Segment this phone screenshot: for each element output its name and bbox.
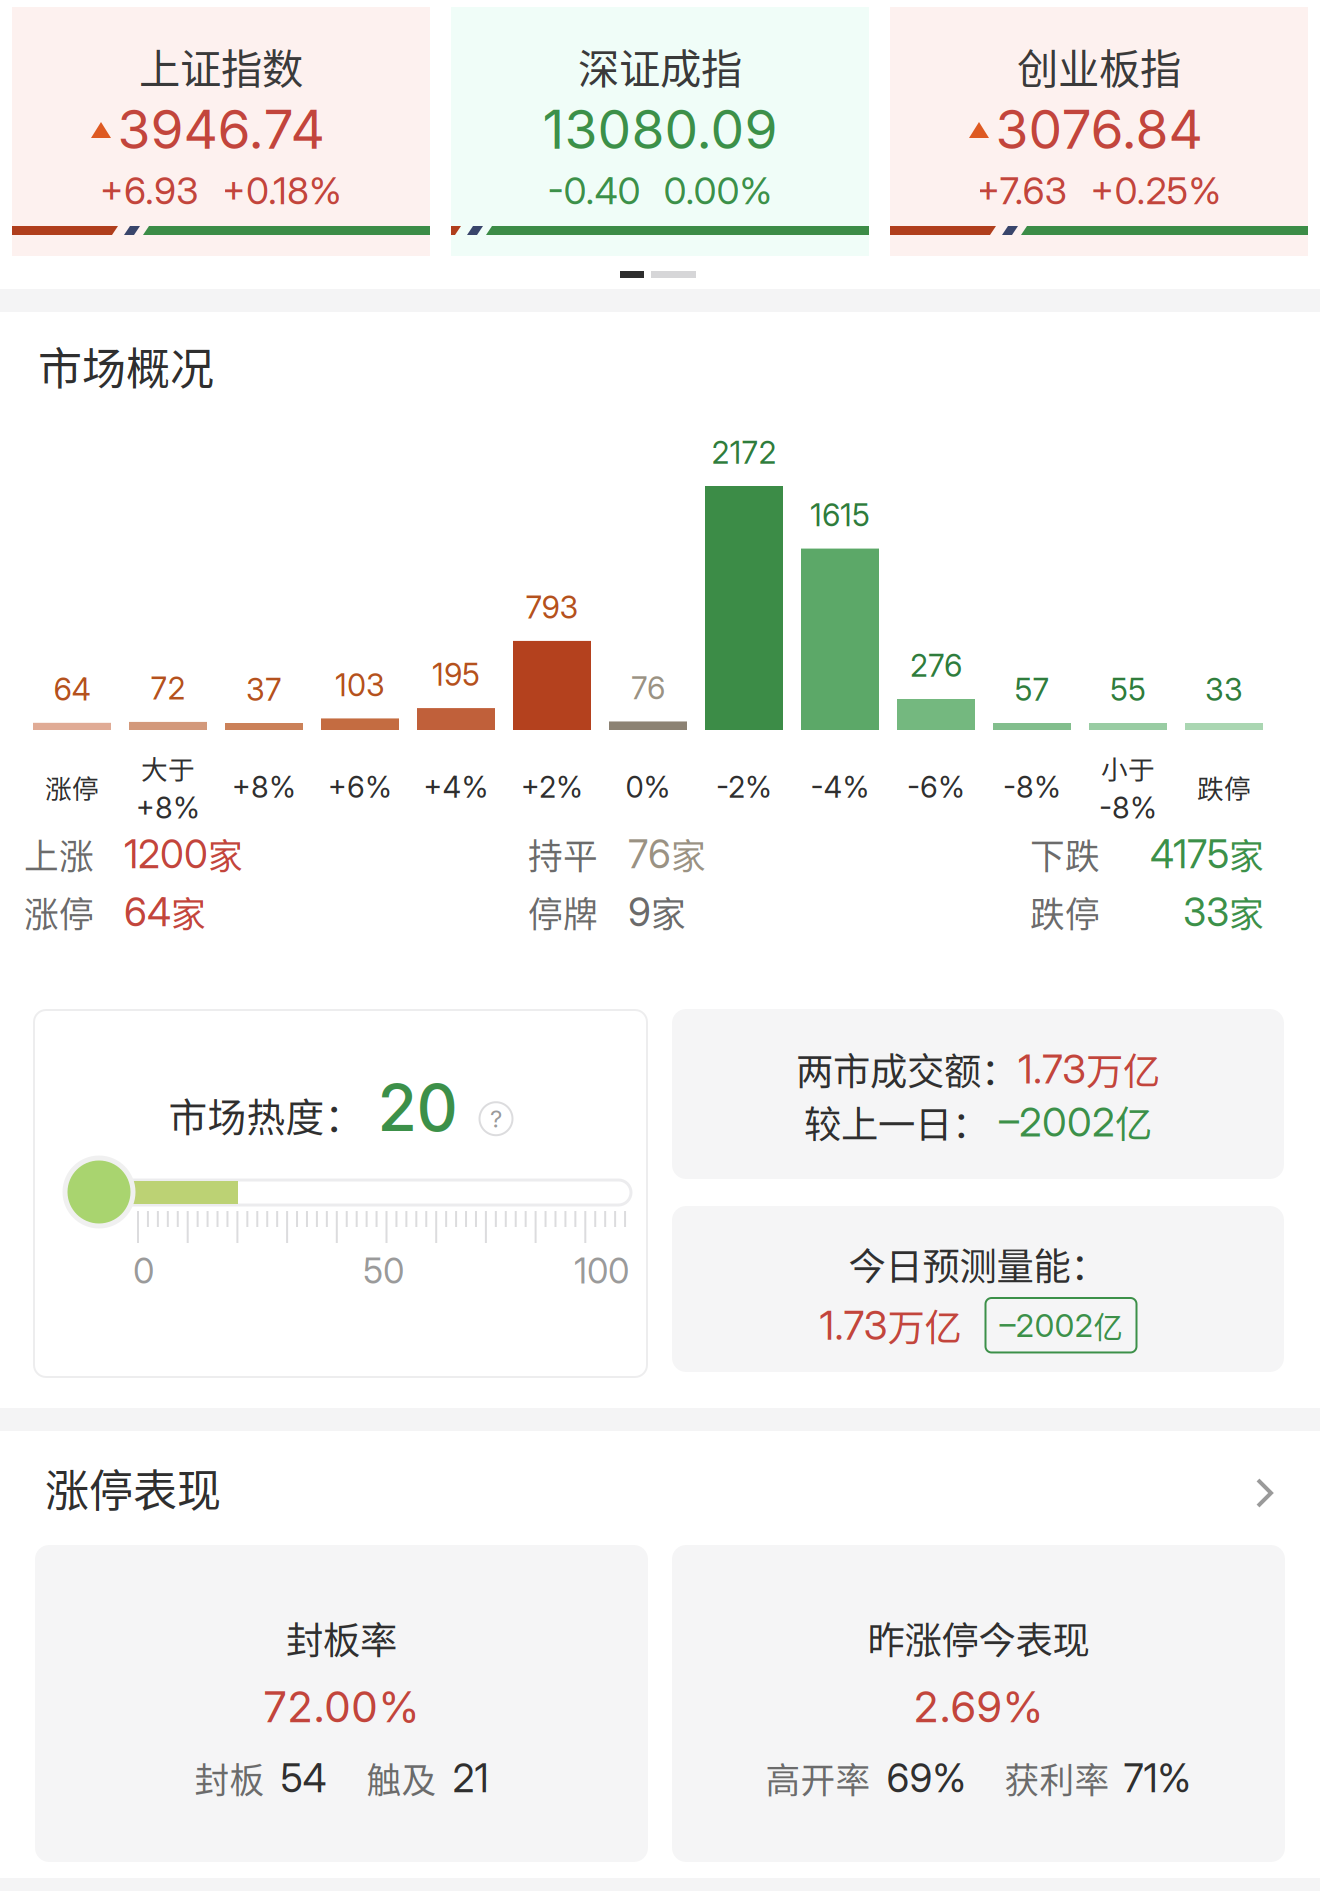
staticText: 276 xyxy=(910,647,962,684)
staticText: 停牌 xyxy=(528,887,598,937)
staticText: 亿 xyxy=(1093,1304,1122,1346)
staticText: -0.40 xyxy=(547,168,640,213)
staticText: 0% xyxy=(625,769,670,805)
staticText: -6% xyxy=(907,769,965,805)
staticText: +8% xyxy=(232,769,296,805)
staticText: 195 xyxy=(432,656,480,693)
staticText: 上证指数 xyxy=(139,36,303,96)
staticText: 1.73 xyxy=(1018,1045,1086,1093)
staticText: 持平 xyxy=(528,829,598,879)
staticText: 100 xyxy=(574,1250,629,1292)
staticText: 1200 xyxy=(124,831,208,877)
button[interactable]: 创业板指 xyxy=(890,7,1308,256)
staticText: 9 xyxy=(628,889,651,935)
staticText: 涨停表现 xyxy=(45,1456,221,1520)
staticText: 1.73 xyxy=(819,1301,887,1349)
staticText: 上涨 xyxy=(24,829,94,879)
staticText: 两市成交额： xyxy=(796,1042,1018,1096)
staticText: 下跌 xyxy=(1030,829,1100,879)
staticText: 创业板指 xyxy=(1017,36,1181,96)
staticText: 1615 xyxy=(810,497,870,534)
staticText: 57 xyxy=(1014,671,1049,708)
button[interactable]: 涨停表现 xyxy=(0,1431,1320,1548)
staticText: +6.93 xyxy=(100,168,199,213)
staticText: +7.63 xyxy=(976,168,1067,213)
staticText: 3076.84 xyxy=(995,97,1202,161)
staticText: +0.25% xyxy=(1090,168,1221,213)
staticText: 71% xyxy=(1123,1755,1191,1801)
staticText: 家 xyxy=(171,887,206,937)
staticText: ? xyxy=(490,1104,502,1133)
staticText: –2002 xyxy=(999,1098,1115,1146)
staticText: 家 xyxy=(671,829,706,879)
staticText: 封板率 xyxy=(286,1611,397,1665)
staticText: +6% xyxy=(328,769,392,805)
staticText: 37 xyxy=(246,671,282,708)
staticText: 小于 xyxy=(1101,748,1155,787)
staticText: -4% xyxy=(810,769,869,805)
staticText: 家 xyxy=(208,829,243,879)
staticText: 家 xyxy=(1229,887,1264,937)
staticText: 较上一日： xyxy=(804,1095,989,1149)
staticText: 跌停 xyxy=(1030,887,1100,937)
staticText: 54 xyxy=(280,1755,326,1801)
staticText: -2% xyxy=(716,769,772,805)
staticText: 封板 xyxy=(194,1753,264,1803)
staticText: +0.18% xyxy=(222,168,342,213)
staticText: 4175 xyxy=(1150,831,1229,877)
staticText: 昨涨停今表现 xyxy=(867,1611,1089,1665)
staticText: 72 xyxy=(150,670,185,707)
staticText: -8% xyxy=(1003,769,1061,805)
button[interactable]: 深证成指 xyxy=(451,7,869,256)
staticText: 3946.74 xyxy=(117,97,324,161)
staticText: 72.00% xyxy=(263,1681,420,1733)
staticText: 76 xyxy=(631,669,665,707)
staticText: 33 xyxy=(1205,671,1243,708)
staticText: 21 xyxy=(452,1755,488,1801)
staticText: 万亿 xyxy=(1086,1042,1160,1096)
staticText: 0 xyxy=(133,1250,154,1292)
staticText: 76 xyxy=(628,831,671,877)
staticText: 33 xyxy=(1183,889,1229,935)
staticText: 55 xyxy=(1110,671,1146,708)
staticText: +4% xyxy=(423,769,488,805)
staticText: 0.00% xyxy=(663,168,772,213)
staticText: 亿 xyxy=(1115,1095,1152,1149)
staticText: 103 xyxy=(335,666,385,703)
staticText: 市场热度： xyxy=(168,1087,363,1143)
staticText: 家 xyxy=(1229,829,1264,879)
staticText: 涨停 xyxy=(24,887,94,937)
staticText: 793 xyxy=(525,589,578,626)
staticText: -8% xyxy=(1099,790,1157,826)
staticText: 20 xyxy=(377,1069,457,1146)
staticText: 触及 xyxy=(366,1753,436,1803)
staticText: 万亿 xyxy=(887,1298,961,1352)
button[interactable]: 上证指数 xyxy=(12,7,430,256)
staticText: 13080.09 xyxy=(542,97,777,161)
staticText: 跌停 xyxy=(1197,768,1251,806)
staticText: –2002 xyxy=(999,1306,1093,1345)
staticText: 2172 xyxy=(711,434,776,471)
staticText: 获利率 xyxy=(1004,1753,1109,1803)
staticText: 家 xyxy=(651,887,686,937)
staticText: 市场概况 xyxy=(38,334,214,398)
staticText: 深证成指 xyxy=(578,36,742,96)
staticText: +8% xyxy=(136,790,200,826)
staticText: 大于 xyxy=(141,748,195,787)
staticText: 高开率 xyxy=(765,1753,870,1803)
staticText: 50 xyxy=(363,1250,404,1292)
staticText: 涨停 xyxy=(45,768,99,806)
staticText: 69% xyxy=(886,1755,966,1801)
staticText: 2.69% xyxy=(913,1681,1044,1733)
staticText: 64 xyxy=(124,889,171,935)
staticText: 64 xyxy=(53,671,90,708)
staticText: +2% xyxy=(521,769,583,805)
staticText: 今日预测量能： xyxy=(848,1237,1107,1291)
